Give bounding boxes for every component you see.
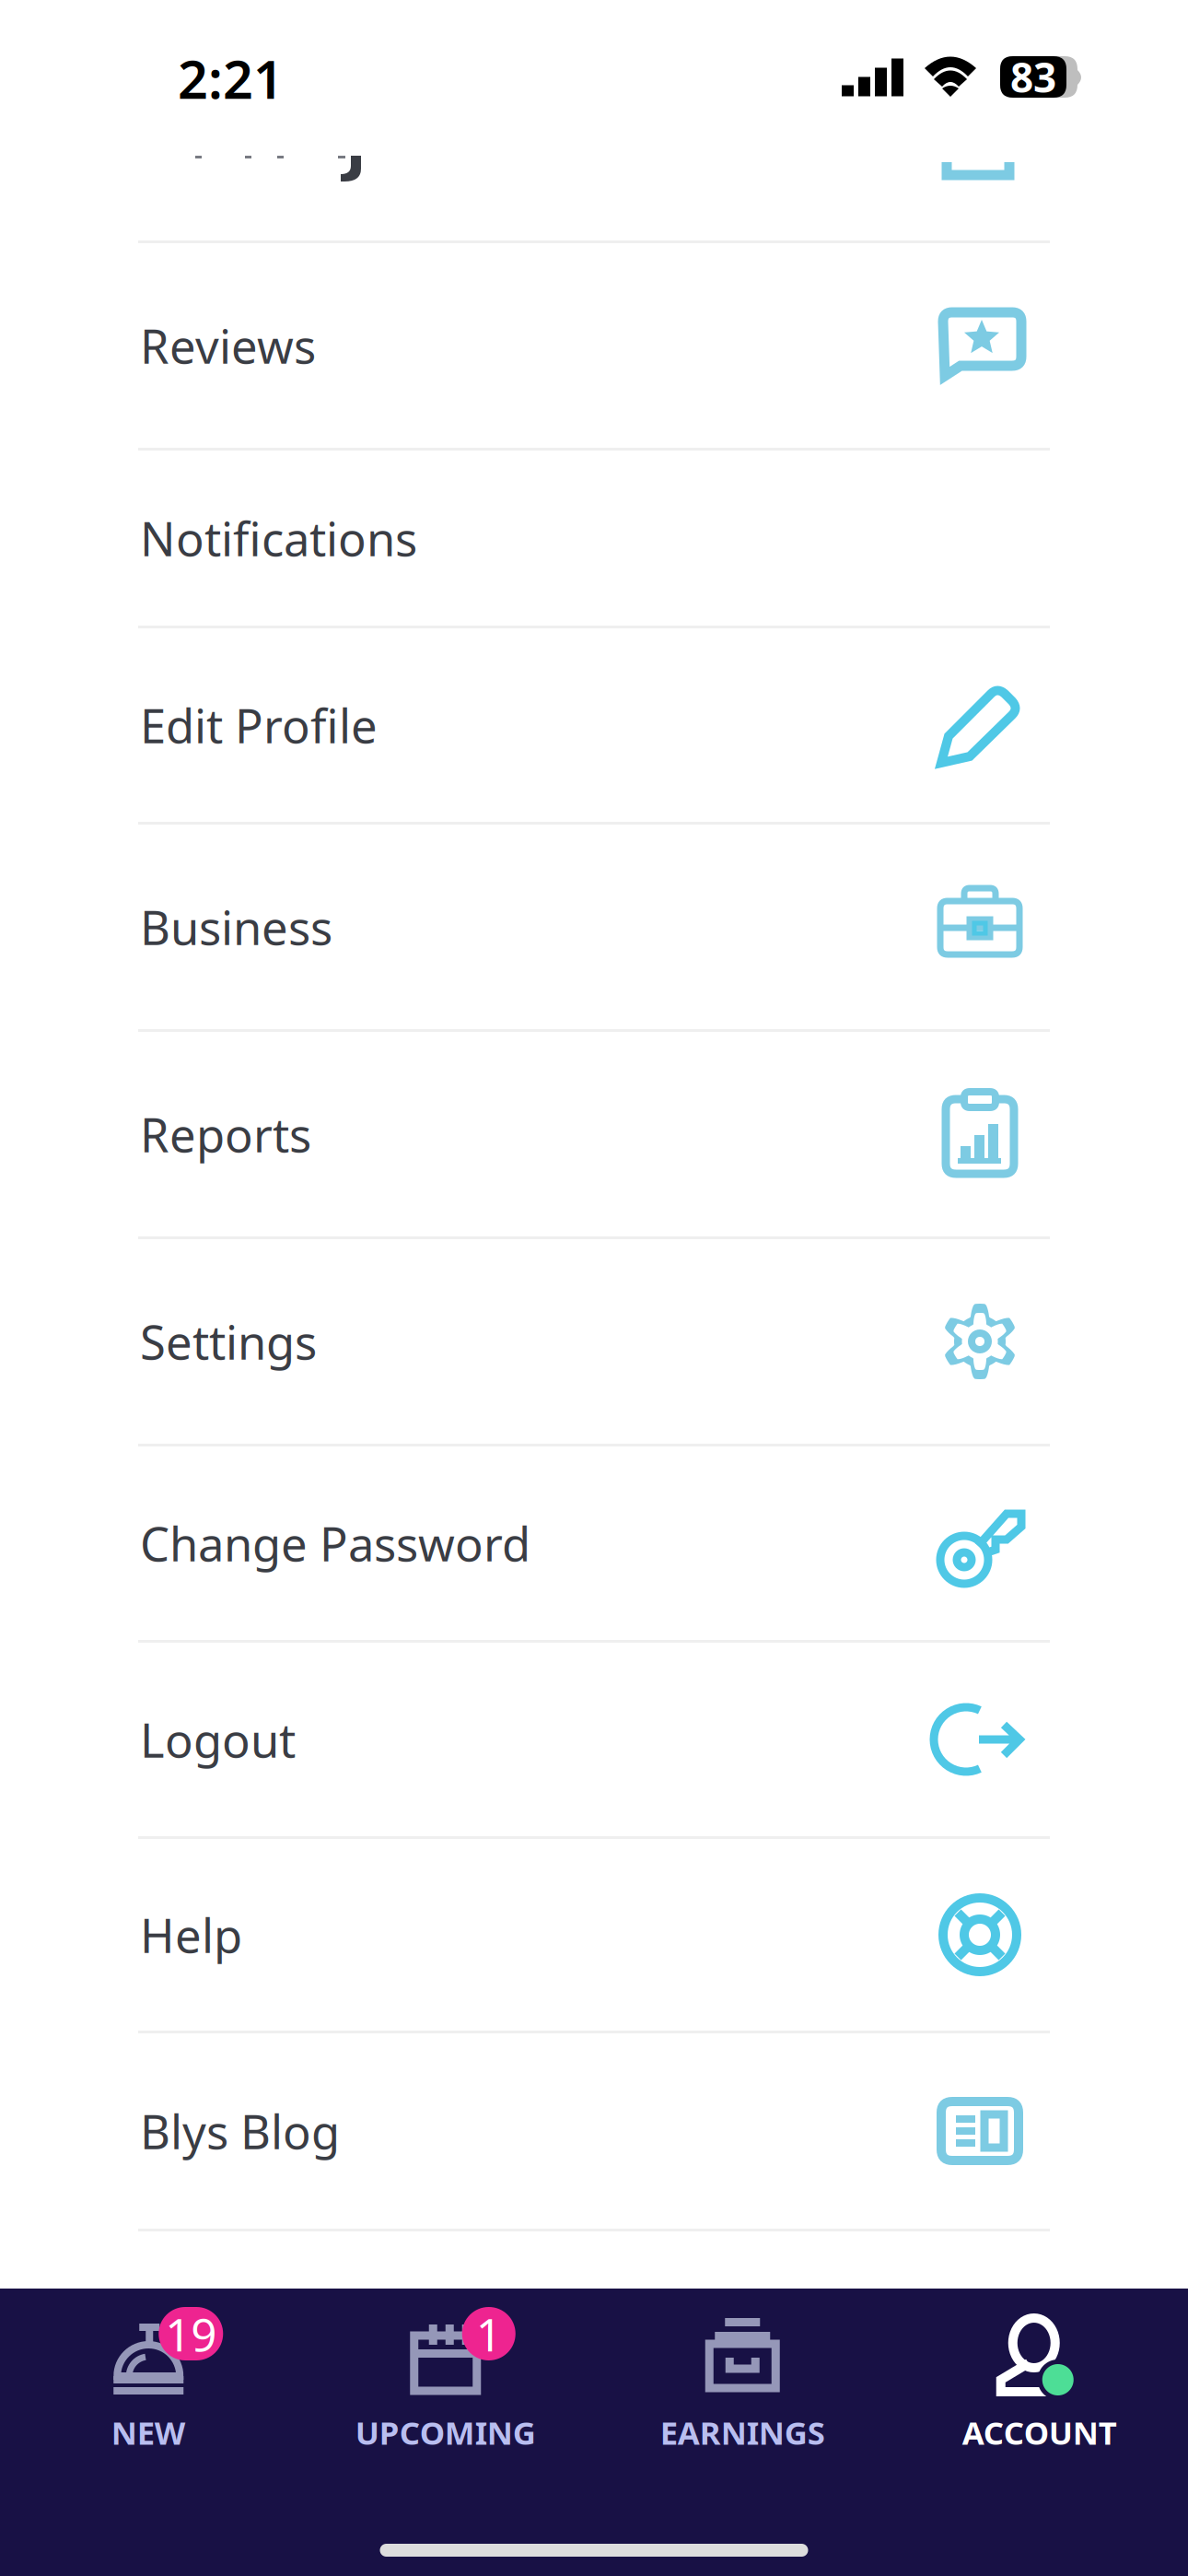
staticText: Reviews — [140, 315, 316, 377]
staticText: Logout — [140, 1708, 296, 1770]
button[interactable]: Business — [0, 825, 1188, 1029]
staticText: Notifications — [140, 507, 417, 569]
button[interactable]: Help — [0, 1839, 1188, 2031]
staticText: Change Password — [140, 1512, 530, 1574]
staticText: 19 — [165, 2303, 217, 2364]
button[interactable]: ACCOUNT — [891, 2314, 1188, 2453]
button[interactable]: Blys Blog — [0, 2033, 1188, 2229]
staticText: UPCOMING — [355, 2411, 536, 2453]
staticText: NEW — [111, 2411, 186, 2453]
staticText: Blys Blog — [140, 2100, 340, 2162]
staticText: Reports — [140, 1103, 311, 1165]
staticText: 83 — [1010, 50, 1056, 104]
button[interactable]: 1 — [297, 2314, 594, 2453]
button[interactable]: Reviews — [0, 243, 1188, 448]
button[interactable]: Logout — [0, 1643, 1188, 1836]
staticText: Settings — [140, 1310, 317, 1372]
button[interactable]: Notifications — [0, 451, 1188, 626]
button[interactable]: EARNINGS — [594, 2314, 891, 2453]
button[interactable]: Edit Profile — [0, 628, 1188, 822]
staticText: Business — [140, 896, 332, 958]
staticText: 2:21 — [178, 43, 284, 113]
staticText: Help — [140, 1904, 242, 1966]
button[interactable]: 19 — [0, 2314, 297, 2453]
staticText: 1 — [476, 2303, 502, 2364]
button[interactable] — [0, 119, 1188, 240]
button[interactable]: Settings — [0, 1239, 1188, 1444]
staticText: ACCOUNT — [962, 2411, 1117, 2453]
staticText: EARNINGS — [660, 2411, 825, 2453]
button[interactable]: Reports — [0, 1032, 1188, 1236]
button[interactable]: Change Password — [0, 1446, 1188, 1640]
staticText: Edit Profile — [140, 694, 378, 756]
